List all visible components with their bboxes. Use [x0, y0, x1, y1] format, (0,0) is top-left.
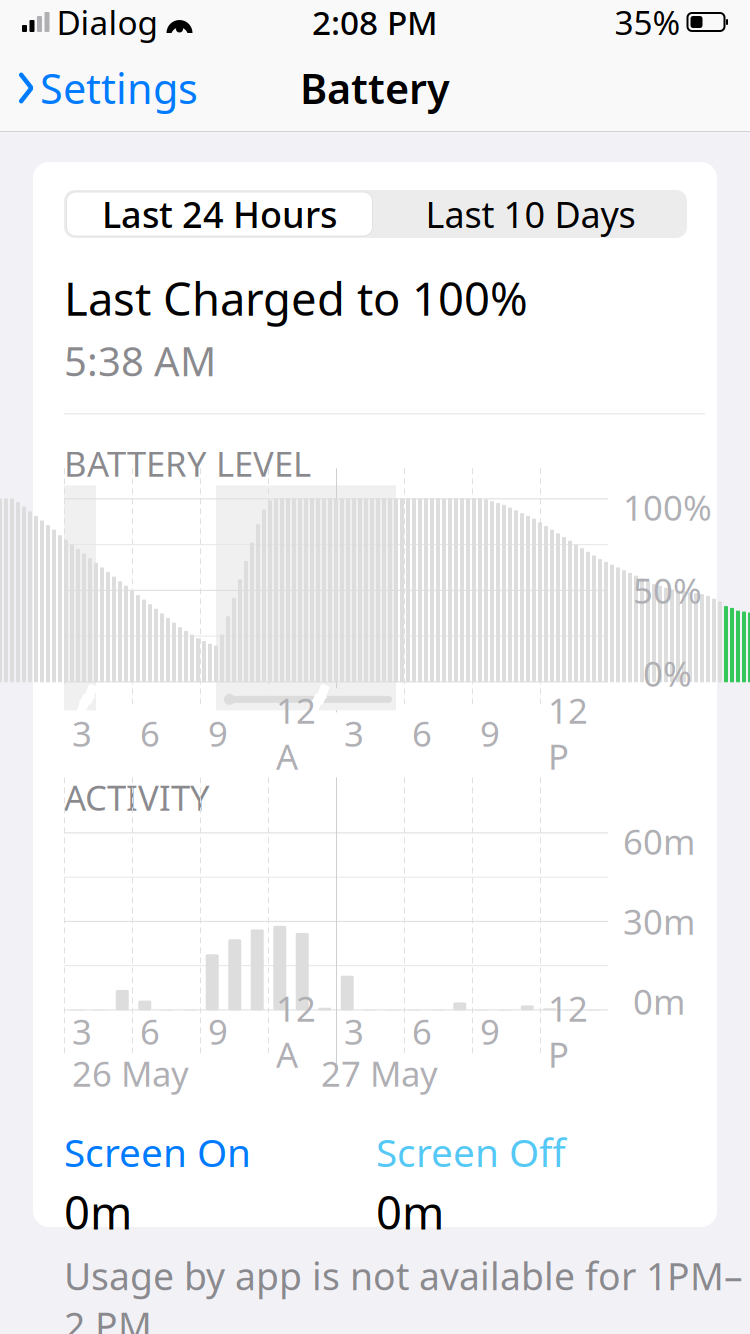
staticText: 35% [614, 0, 680, 44]
staticText: ACTIVITY [64, 774, 210, 820]
staticText: 9 [208, 710, 228, 756]
staticText: 0m [64, 1182, 132, 1242]
staticText: 60m [623, 818, 695, 864]
staticText: 30m [623, 898, 695, 944]
staticText: Screen On [64, 1126, 251, 1178]
staticText: 27 May [321, 1050, 438, 1096]
staticText: 12 A [276, 985, 316, 1077]
staticText: 3 [72, 710, 92, 756]
staticText: Battery [300, 61, 450, 115]
staticText: 6 [412, 710, 432, 756]
staticText: 50% [633, 567, 702, 613]
staticText: 3 [344, 1008, 364, 1054]
staticText: 0% [643, 650, 692, 696]
staticText: 6 [412, 1008, 432, 1054]
staticText: Settings [40, 61, 198, 115]
staticText: 5:38 AM [64, 334, 216, 387]
staticText: Screen Off [376, 1126, 566, 1178]
staticText: BATTERY LEVEL [64, 440, 311, 486]
staticText: Last 10 Days [425, 190, 635, 238]
staticText: 3 [72, 1008, 92, 1054]
staticText: Last Charged to 100% [64, 268, 528, 328]
button[interactable]: Last 24 Hours [64, 190, 374, 238]
staticText: 6 [140, 1008, 160, 1054]
button[interactable]: Last 10 Days [374, 190, 686, 238]
button[interactable]: Settings [0, 53, 208, 123]
staticText: 2:08 PM [312, 0, 438, 44]
staticText: 6 [140, 710, 160, 756]
staticText: Last 24 Hours [102, 190, 337, 238]
staticText: Dialog [56, 0, 158, 44]
staticText: 12 P [548, 985, 588, 1077]
staticText: 9 [480, 1008, 500, 1054]
staticText: 12 P [548, 687, 588, 779]
staticText: 9 [480, 710, 500, 756]
staticText: 0m [376, 1182, 444, 1242]
staticText: 100% [623, 484, 712, 530]
staticText: 3 [344, 710, 364, 756]
staticText: Usage by app is not available for 1PM–2 … [64, 1251, 743, 1334]
staticText: 12 A [276, 687, 316, 779]
staticText: 26 May [72, 1050, 189, 1096]
staticText: 9 [208, 1008, 228, 1054]
staticText: 0m [633, 978, 685, 1024]
